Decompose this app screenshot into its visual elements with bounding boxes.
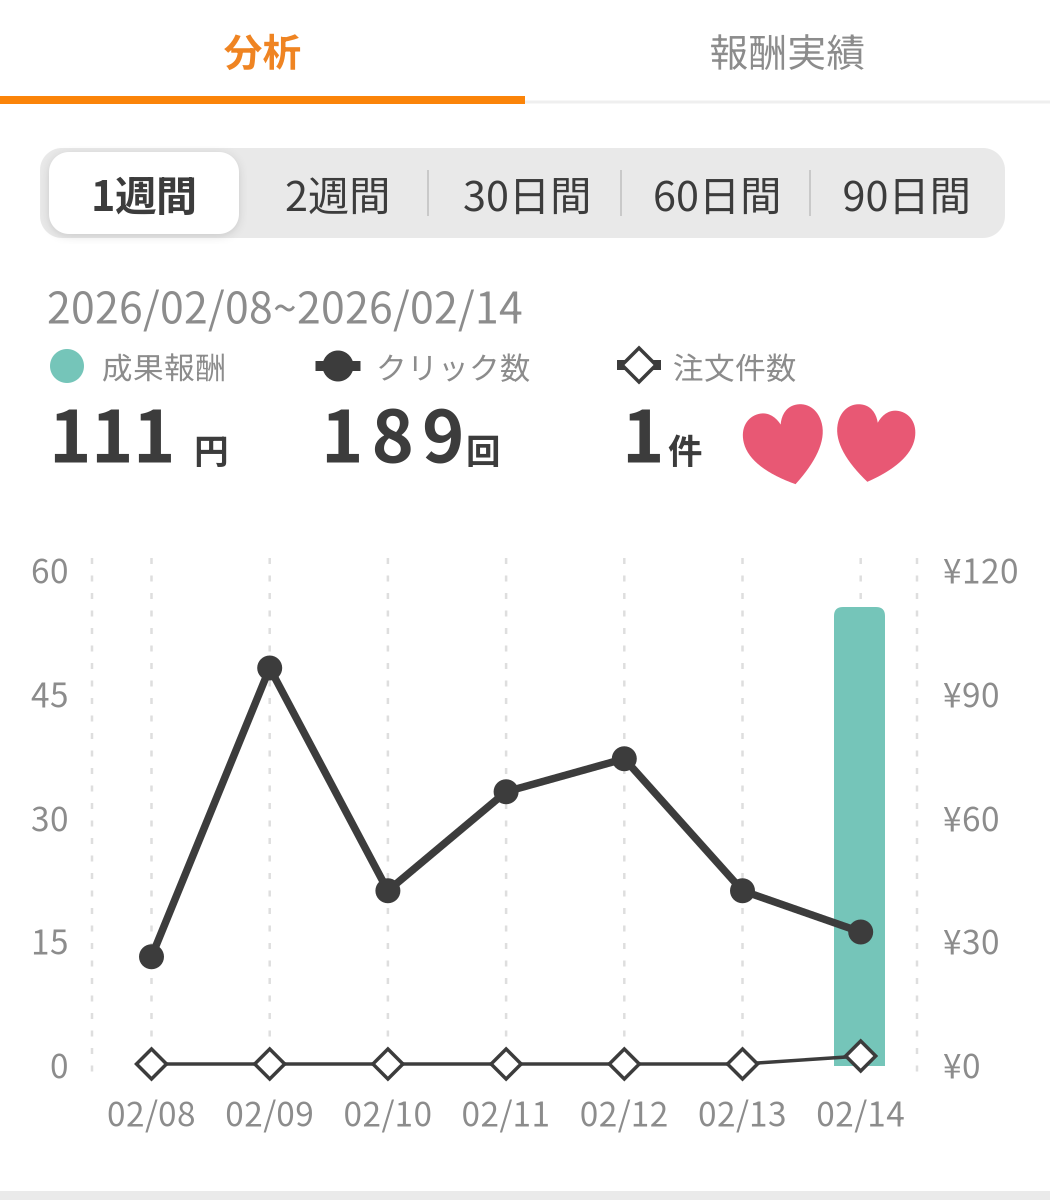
staticText: 報酬実績 bbox=[709, 22, 865, 78]
button[interactable]: 1週間 bbox=[49, 152, 239, 234]
staticText: 30日間 bbox=[463, 163, 591, 223]
button[interactable]: 30日間 bbox=[434, 152, 620, 234]
staticText: 2026/02/08~2026/02/14 bbox=[47, 274, 523, 336]
staticText: 02/11 bbox=[462, 1088, 551, 1136]
staticText: 15 bbox=[31, 916, 69, 964]
button[interactable]: 分析 bbox=[0, 0, 525, 100]
staticText: 45 bbox=[31, 669, 69, 717]
staticText: 02/12 bbox=[580, 1088, 669, 1136]
staticText: 189 bbox=[321, 379, 464, 483]
staticText: 1週間 bbox=[91, 163, 197, 223]
staticText: 30 bbox=[31, 793, 69, 841]
staticText: ¥60 bbox=[943, 793, 1000, 841]
staticText: クリック数 bbox=[376, 344, 531, 388]
staticText: 02/14 bbox=[816, 1088, 905, 1136]
staticText: ¥90 bbox=[943, 669, 1000, 717]
staticText: 60日間 bbox=[653, 163, 781, 223]
button[interactable]: 2週間 bbox=[244, 152, 430, 234]
staticText: 注文件数 bbox=[673, 344, 797, 388]
button[interactable]: 90日間 bbox=[813, 152, 999, 234]
staticText: ¥30 bbox=[943, 916, 1000, 964]
staticText: 111 bbox=[49, 379, 175, 483]
staticText: 02/09 bbox=[225, 1088, 314, 1136]
staticText: 02/13 bbox=[698, 1088, 787, 1136]
staticText: 02/10 bbox=[343, 1088, 432, 1136]
staticText: 件 bbox=[668, 424, 703, 474]
staticText: ¥120 bbox=[943, 545, 1019, 593]
staticText: 分析 bbox=[223, 22, 301, 78]
staticText: ¥0 bbox=[943, 1040, 981, 1088]
button[interactable]: 報酬実績 bbox=[525, 0, 1050, 100]
staticText: 円 bbox=[194, 424, 229, 474]
staticText: 1 bbox=[622, 379, 664, 483]
staticText: 02/08 bbox=[107, 1088, 196, 1136]
staticText: 60 bbox=[31, 545, 69, 593]
button[interactable]: 60日間 bbox=[624, 152, 810, 234]
staticText: 0 bbox=[50, 1040, 69, 1088]
staticText: 90日間 bbox=[842, 163, 970, 223]
staticText: 2週間 bbox=[285, 163, 390, 223]
staticText: 回 bbox=[466, 424, 501, 474]
staticText: 成果報酬 bbox=[102, 344, 226, 388]
